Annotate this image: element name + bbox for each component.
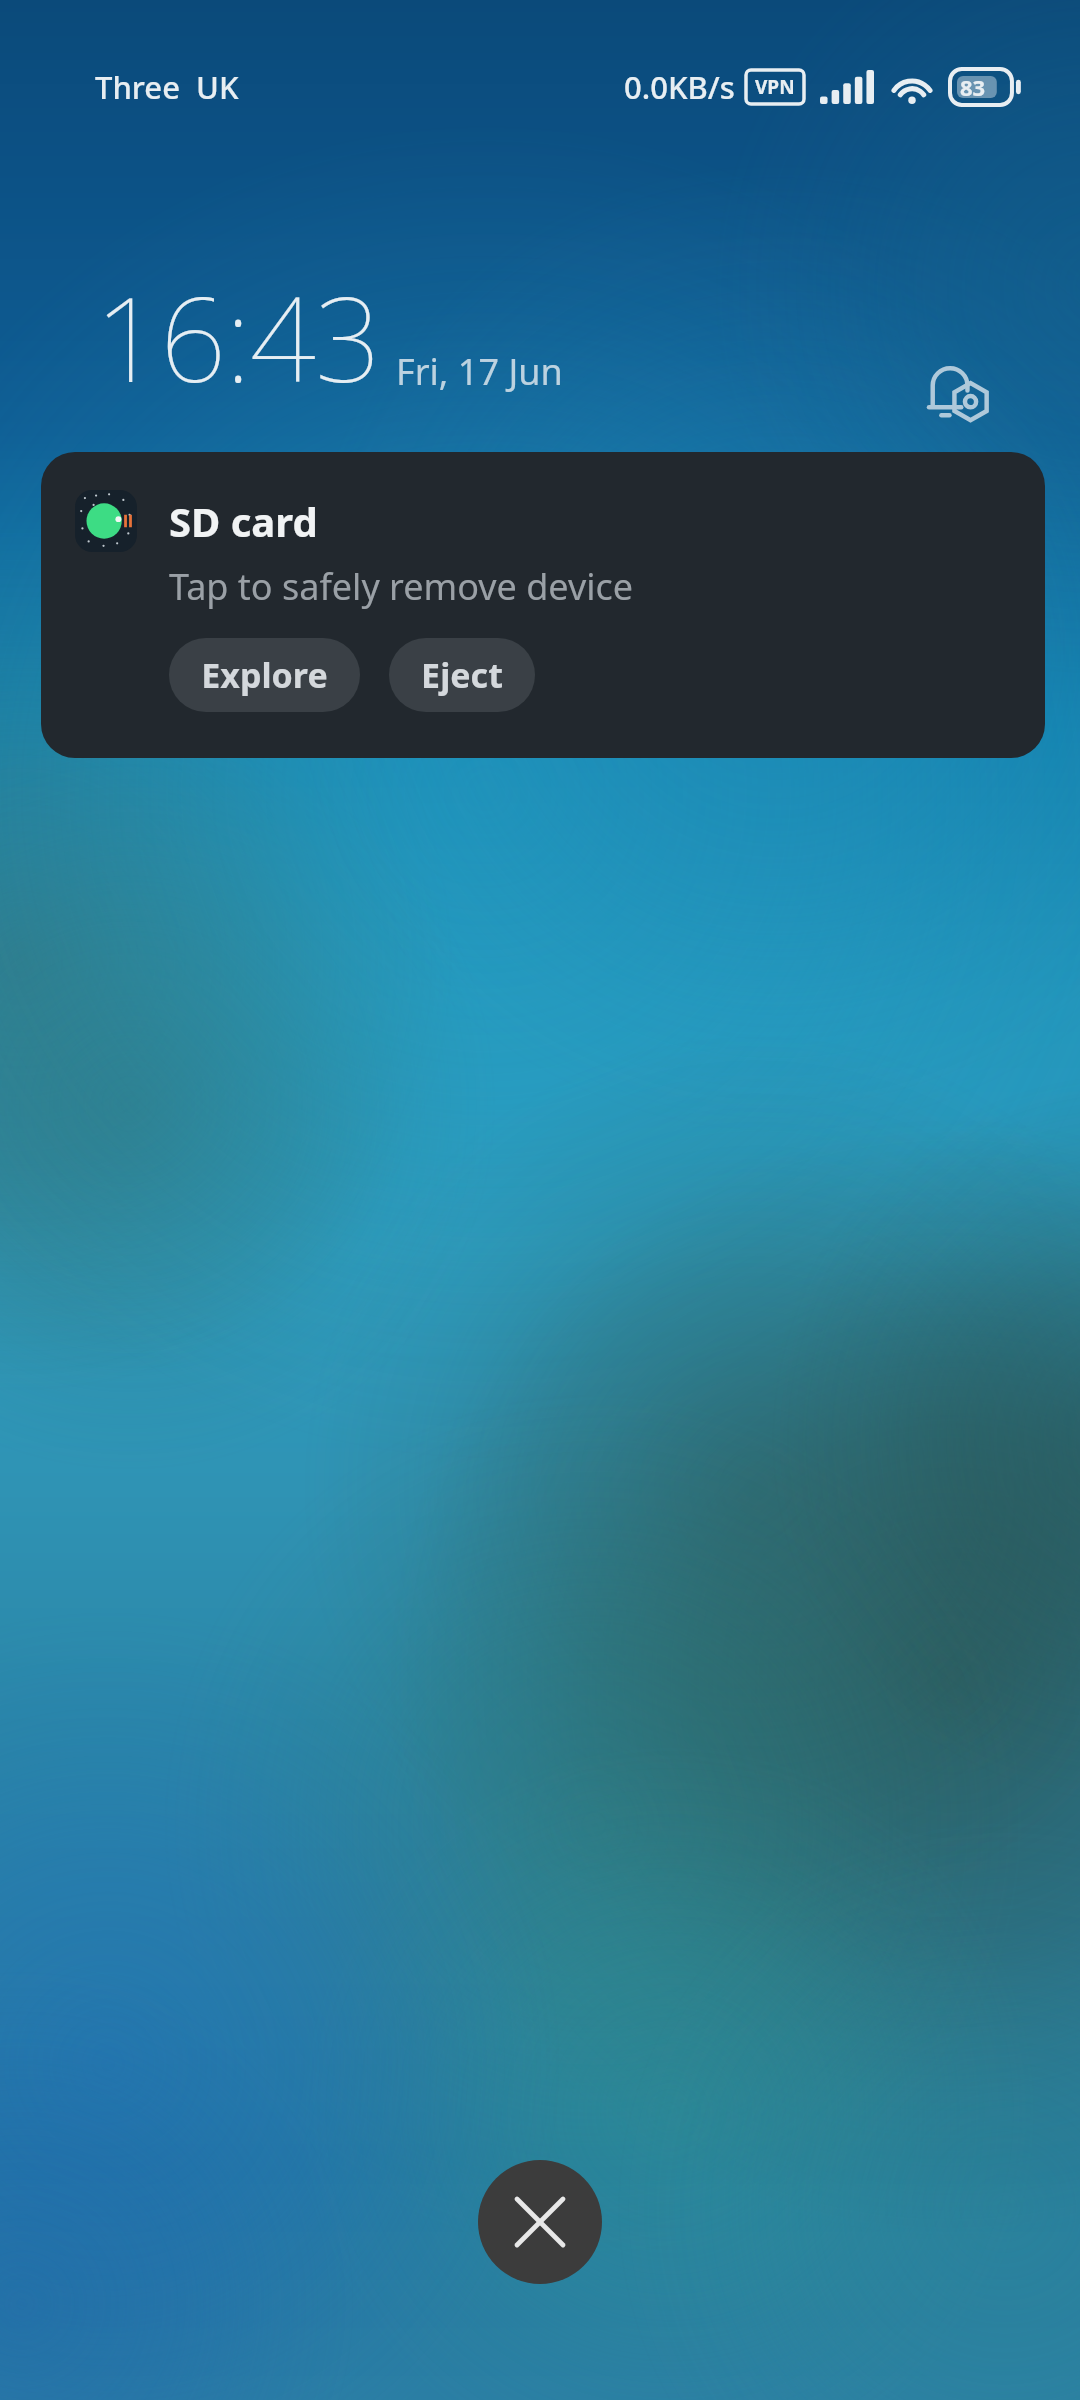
staticText: VPN [755,74,795,100]
staticText: 83 [960,72,986,102]
staticText: 16:43 [95,258,380,416]
button[interactable]: Explore [169,638,360,712]
staticText: SD card [169,494,318,548]
button[interactable]: SD card [41,452,1045,758]
staticText: Eject [421,652,503,698]
staticText: Three UK [95,66,239,108]
staticText: 0.0KB/s [624,66,735,108]
staticText: Explore [201,652,328,698]
button[interactable]: Clear all notifications [478,2160,602,2284]
button[interactable]: Eject [389,638,535,712]
staticText: Tap to safely remove device [169,562,634,611]
staticText: Fri, 17 Jun [396,347,563,396]
button[interactable]: Notification settings [918,351,1002,435]
